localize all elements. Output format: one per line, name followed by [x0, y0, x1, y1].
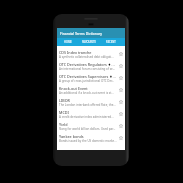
staticText: An international forum consisting of se…	[59, 67, 116, 71]
staticText: LIBOR	[59, 98, 70, 103]
staticText: Yield	[59, 122, 68, 127]
button[interactable]: Favourite	[117, 74, 125, 82]
staticText: Bonds issued by the US domestic marke…	[59, 139, 117, 143]
staticText: A synthetic collateralised debt obligati…	[59, 55, 114, 59]
staticText: FAVOURITE	[82, 40, 96, 44]
staticText: The London interbank offered Rate, the…	[59, 103, 116, 107]
staticText: HOME	[64, 40, 72, 44]
staticText: Slang for world billion dollars. Used pa…	[59, 127, 116, 131]
button[interactable]: OTC Derivatives Regulators ♦♦ For…	[57, 60, 125, 72]
staticText: OTC Derivatives Regulators ♦♦ For…	[59, 62, 117, 67]
staticText: MCDI	[59, 110, 69, 115]
staticText: Financial Terms Dictionary	[60, 31, 102, 36]
button[interactable]: OTC Derivatives Supervisors ♦♦ Gr…	[57, 72, 125, 84]
staticText: Yankee bonds	[59, 134, 84, 139]
button[interactable]: Favourite	[117, 134, 125, 142]
button[interactable]: CDS Index tranche	[57, 48, 125, 60]
button[interactable]: LIBOR	[57, 96, 125, 108]
button[interactable]: Favourite	[117, 98, 125, 106]
staticText: A group of cross-jurisdictional OTC Der…	[59, 79, 115, 83]
staticText: An additional if a knock-out event is st…	[59, 91, 114, 95]
button[interactable]: FAVOURITE	[78, 38, 100, 46]
staticText: RECENT	[106, 40, 116, 44]
button[interactable]: Favourite	[117, 50, 125, 58]
button[interactable]: Favourite	[117, 110, 125, 118]
button[interactable]: Favourite	[117, 122, 125, 130]
button[interactable]: Favourite	[117, 86, 125, 94]
staticText: A credit derivative index administered…	[59, 115, 114, 119]
button[interactable]: HOME	[57, 38, 78, 46]
button[interactable]: Yield	[57, 120, 125, 132]
button[interactable]: MCDI	[57, 108, 125, 120]
button[interactable]: Yankee bonds	[57, 132, 125, 144]
staticText: Knock-out Event	[59, 86, 88, 91]
staticText: OTC Derivatives Supervisors ♦♦ Gr…	[59, 74, 117, 79]
staticText: CDS Index tranche	[59, 50, 92, 55]
button[interactable]: Favourite	[117, 62, 125, 70]
button[interactable]: RECENT	[100, 38, 122, 46]
button[interactable]: Knock-out Event	[57, 84, 125, 96]
